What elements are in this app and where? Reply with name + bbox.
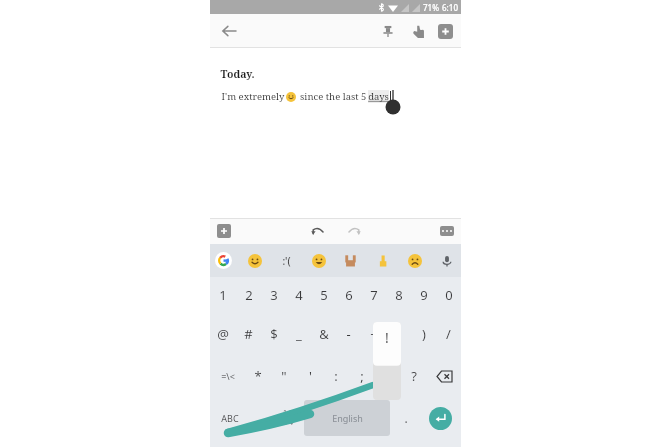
- staticText: 3 4: [283, 418, 293, 428]
- button[interactable]: (: [386, 313, 411, 355]
- staticText: :: [334, 367, 338, 385]
- button[interactable]: .: [393, 397, 419, 439]
- button[interactable]: 2: [236, 277, 261, 313]
- button[interactable]: More options: [440, 226, 454, 236]
- button[interactable]: _: [286, 313, 311, 355]
- button[interactable]: #: [236, 313, 261, 355]
- staticText: #: [244, 325, 253, 343]
- button[interactable]: Add: [438, 24, 453, 39]
- staticText: 6:10: [442, 2, 458, 13]
- staticText: 1: [219, 286, 227, 304]
- staticText: @: [217, 325, 229, 343]
- button[interactable]: ': [297, 355, 323, 397]
- staticText: 8: [395, 286, 403, 304]
- staticText: ): [422, 325, 426, 343]
- button[interactable]: !: [375, 355, 401, 397]
- button[interactable]: Laughing: [309, 251, 328, 270]
- button[interactable]: 7: [361, 277, 386, 313]
- button[interactable]: ): [411, 313, 436, 355]
- button[interactable]: :: [323, 355, 349, 397]
- staticText: !: [385, 328, 389, 347]
- button[interactable]: 6: [336, 277, 361, 313]
- staticText: ;: [360, 367, 364, 385]
- staticText: ,: [260, 410, 264, 426]
- staticText: *: [254, 367, 262, 385]
- button[interactable]: 5: [311, 277, 336, 313]
- button[interactable]: Redo: [345, 222, 363, 240]
- button[interactable]: ;: [349, 355, 375, 397]
- button[interactable]: Insert: [217, 224, 231, 238]
- staticText: 3: [270, 286, 278, 304]
- staticText: =\<: [221, 370, 235, 382]
- staticText: &: [319, 325, 329, 343]
- staticText: ?: [411, 367, 417, 385]
- staticText: days: [368, 90, 389, 103]
- button[interactable]: Back: [218, 20, 240, 42]
- button[interactable]: /: [436, 313, 461, 355]
- staticText: .: [404, 410, 408, 426]
- button[interactable]: =\<: [210, 355, 245, 397]
- button[interactable]: Enter: [429, 407, 452, 430]
- staticText: :'(: [282, 254, 291, 268]
- button[interactable]: Pin: [378, 21, 398, 41]
- staticText: 4: [295, 286, 303, 304]
- button[interactable]: *: [245, 355, 271, 397]
- button[interactable]: ,: [249, 397, 275, 439]
- staticText: +: [370, 325, 378, 343]
- staticText: I'm extremely: [220, 90, 286, 103]
- button[interactable]: ?: [401, 355, 427, 397]
- staticText: English: [332, 412, 363, 424]
- button[interactable]: $: [261, 313, 286, 355]
- button[interactable]: Sad: [405, 251, 424, 270]
- staticText: 2: [245, 286, 253, 304]
- staticText: 71%: [423, 2, 439, 13]
- staticText: ': [309, 367, 312, 385]
- button[interactable]: 0: [436, 277, 461, 313]
- button[interactable]: ABC: [210, 397, 249, 439]
- button[interactable]: Pointing up: [373, 251, 392, 270]
- button[interactable]: 3: [261, 277, 286, 313]
- staticText: 7: [370, 286, 378, 304]
- staticText: 0: [445, 286, 453, 304]
- button[interactable]: -: [336, 313, 361, 355]
- button[interactable]: !: [373, 324, 401, 350]
- button[interactable]: 1: [210, 277, 236, 313]
- button[interactable]: :'(: [277, 251, 296, 270]
- staticText: 6: [345, 286, 353, 304]
- button[interactable]: +: [361, 313, 386, 355]
- button[interactable]: 4: [286, 277, 311, 313]
- staticText: 5: [320, 286, 328, 304]
- button[interactable]: &: [311, 313, 336, 355]
- button[interactable]: Voice input: [437, 251, 456, 270]
- staticText: $: [270, 325, 278, 343]
- staticText: /: [446, 325, 451, 343]
- button[interactable]: @: [210, 313, 236, 355]
- button[interactable]: Today.: [210, 48, 461, 218]
- button[interactable]: Backspace: [427, 355, 461, 397]
- button[interactable]: ": [271, 355, 297, 397]
- staticText: since the last 5: [296, 90, 368, 103]
- button[interactable]: Handwriting: [408, 21, 428, 41]
- button[interactable]: 8: [386, 277, 411, 313]
- staticText: Today.: [220, 67, 255, 81]
- staticText: ABC: [221, 412, 239, 424]
- staticText: 1 2: [283, 408, 293, 418]
- button[interactable]: English: [304, 400, 390, 436]
- staticText: _: [296, 325, 302, 343]
- button[interactable]: Numbers: [275, 397, 301, 439]
- staticText: 9: [420, 286, 428, 304]
- button[interactable]: Undo: [309, 222, 327, 240]
- button[interactable]: 9: [411, 277, 436, 313]
- button[interactable]: Rock hand: [341, 251, 360, 270]
- staticText: ": [281, 367, 287, 385]
- button[interactable]: Smiley: [245, 251, 264, 270]
- button[interactable]: Google: [215, 252, 232, 269]
- staticText: -: [346, 325, 351, 343]
